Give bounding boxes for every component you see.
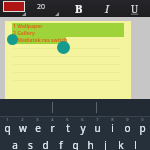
staticText: 0 <box>141 117 144 122</box>
button[interactable]: 9 <box>120 117 135 134</box>
staticText: k <box>118 138 124 150</box>
button[interactable]: j <box>98 134 113 150</box>
button[interactable]: 7 <box>90 117 105 134</box>
staticText: a <box>12 138 18 150</box>
staticText: t <box>66 121 70 135</box>
staticText: j <box>104 138 107 150</box>
button[interactable]: 20 <box>33 1 63 16</box>
staticText: B <box>75 1 83 16</box>
staticText: u <box>94 121 101 135</box>
staticText: 7 <box>96 117 99 122</box>
button[interactable]: g <box>68 134 83 150</box>
button[interactable]: Text colour <box>3 1 29 16</box>
button[interactable]: 6 <box>75 117 90 134</box>
button[interactable]: B <box>68 0 90 17</box>
button[interactable]: k <box>113 134 128 150</box>
button[interactable]: 3 <box>30 117 45 134</box>
button[interactable]: 8 <box>105 117 120 134</box>
staticText: i <box>111 121 114 135</box>
staticText: q <box>4 121 11 135</box>
button[interactable]: Suggestion <box>50 99 100 116</box>
staticText: 6 <box>81 117 84 122</box>
staticText: 1 Wallpaper <box>13 23 43 30</box>
staticText: 2 <box>21 117 24 122</box>
staticText: l <box>134 138 137 150</box>
staticText: w <box>19 121 27 135</box>
staticText: r <box>50 121 55 135</box>
staticText: e <box>35 121 41 135</box>
button[interactable]: a <box>7 134 23 150</box>
button[interactable]: I <box>96 0 118 17</box>
staticText: d <box>42 138 49 150</box>
button[interactable]: Selection end handle <box>57 41 70 54</box>
button[interactable]: f <box>53 134 68 150</box>
staticText: 4 <box>51 117 54 122</box>
staticText: 3 <box>36 117 39 122</box>
staticText: 5 <box>66 117 69 122</box>
button[interactable]: 0 <box>135 117 150 134</box>
staticText: s <box>28 138 33 150</box>
staticText: h <box>87 138 94 150</box>
staticText: 2 Gallery <box>13 30 35 37</box>
button[interactable]: 4 <box>45 117 60 134</box>
button[interactable]: d <box>38 134 53 150</box>
staticText: g <box>72 138 79 150</box>
staticText: 9 <box>126 117 129 122</box>
staticText: 8 <box>111 117 114 122</box>
button[interactable]: s <box>23 134 38 150</box>
button[interactable]: Selection start handle <box>7 34 18 45</box>
staticText: 1 <box>6 117 9 122</box>
staticText: y <box>80 121 86 135</box>
staticText: o <box>124 121 131 135</box>
staticText: U <box>131 2 139 16</box>
button[interactable]: l <box>128 134 143 150</box>
staticText: I <box>105 1 110 16</box>
button[interactable]: U <box>124 0 146 17</box>
button[interactable]: h <box>83 134 98 150</box>
button[interactable]: 5 <box>60 117 75 134</box>
staticText: f <box>59 138 63 150</box>
staticText: 3 Mediatek res switch <box>13 37 68 44</box>
staticText: p <box>139 121 146 135</box>
button[interactable]: 1 <box>0 117 15 134</box>
button[interactable]: 2 <box>15 117 30 134</box>
staticText: 20 <box>37 2 46 12</box>
